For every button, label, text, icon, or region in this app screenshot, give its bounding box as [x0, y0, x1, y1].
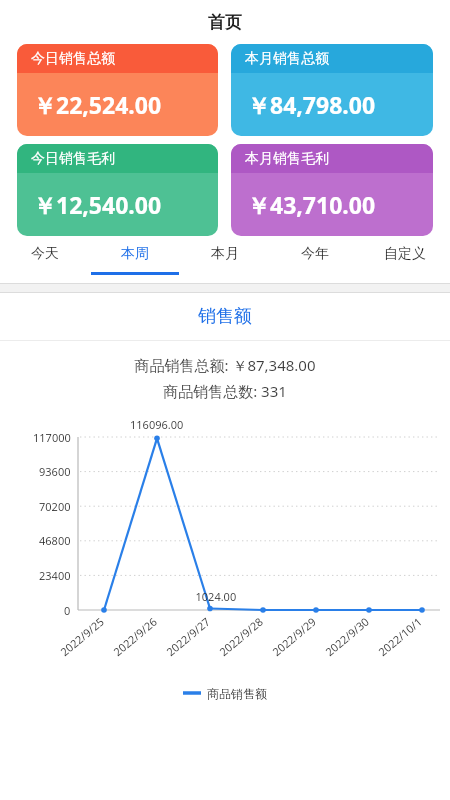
staticText: ￥43,710.00	[247, 189, 376, 220]
button[interactable]: 本月销售总额	[231, 44, 433, 136]
staticText: 本月销售毛利	[245, 150, 329, 168]
staticText: 本月销售总额	[245, 50, 329, 68]
staticText: 自定义	[384, 245, 426, 263]
staticText: 商品销售总数: 331	[0, 381, 450, 401]
staticText: 本月	[211, 245, 239, 263]
staticText: ￥12,540.00	[33, 189, 162, 220]
staticText: 本周	[121, 245, 149, 263]
staticText: ￥84,798.00	[247, 89, 376, 120]
button[interactable]: 本月销售毛利	[231, 144, 433, 236]
staticText: 销售额	[198, 305, 252, 328]
staticText: 商品销售总额: ￥87,348.00	[0, 355, 450, 375]
button[interactable]: 今年	[270, 236, 360, 283]
button[interactable]: 本周	[90, 236, 180, 283]
button[interactable]: 自定义	[360, 236, 450, 283]
staticText: 今日销售总额	[31, 50, 115, 68]
button[interactable]: 今天	[0, 236, 90, 283]
staticText: ￥22,524.00	[33, 89, 162, 120]
button[interactable]: 本月	[180, 236, 270, 283]
staticText: 今天	[31, 245, 59, 263]
staticText: 今日销售毛利	[31, 150, 115, 168]
button[interactable]: 今日销售总额	[17, 44, 218, 136]
staticText: 今年	[301, 245, 329, 263]
staticText: 首页	[208, 12, 242, 33]
button[interactable]: 今日销售毛利	[17, 144, 218, 236]
